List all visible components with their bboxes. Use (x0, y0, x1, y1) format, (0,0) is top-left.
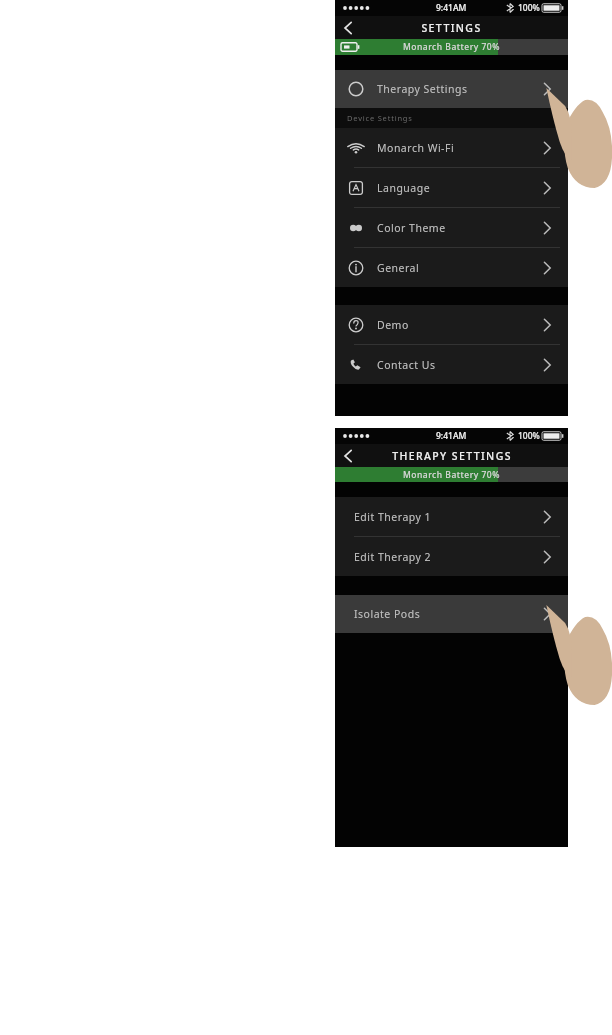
staticText: 9:41AM (436, 430, 467, 442)
button[interactable]: Therapy Settings (335, 70, 568, 108)
staticText: Edit Therapy 2 (354, 550, 432, 564)
staticText: Device Settings (347, 113, 413, 123)
staticText: Monarch Wi-Fi (377, 141, 455, 155)
staticText: 100% (518, 2, 540, 14)
staticText: 100% (518, 430, 540, 442)
staticText: Edit Therapy 1 (354, 510, 432, 524)
staticText: Color Theme (377, 221, 446, 235)
button[interactable]: Edit Therapy 1 (335, 497, 568, 536)
button[interactable]: Monarch Wi-Fi (335, 128, 568, 167)
staticText: Therapy Settings (377, 82, 468, 96)
staticText: General (377, 261, 420, 275)
staticText: Monarch Battery 70% (403, 469, 500, 481)
staticText: Monarch Battery 70% (403, 41, 500, 53)
button[interactable]: Edit Therapy 2 (335, 537, 568, 576)
staticText: Language (377, 181, 431, 195)
button[interactable]: Back (335, 16, 361, 39)
button[interactable]: Language (335, 168, 568, 207)
button[interactable]: Contact Us (335, 345, 568, 384)
staticText: Demo (377, 318, 409, 332)
staticText: THERAPY SETTINGS (392, 449, 512, 463)
staticText: Contact Us (377, 358, 436, 372)
button[interactable]: Demo (335, 305, 568, 344)
button[interactable]: Back (335, 444, 361, 467)
staticText: 9:41AM (436, 2, 467, 14)
staticText: SETTINGS (421, 21, 482, 35)
button[interactable]: Color Theme (335, 208, 568, 247)
button[interactable]: Isolate Pods (335, 595, 568, 633)
staticText: Isolate Pods (354, 607, 421, 621)
button[interactable]: General (335, 248, 568, 287)
